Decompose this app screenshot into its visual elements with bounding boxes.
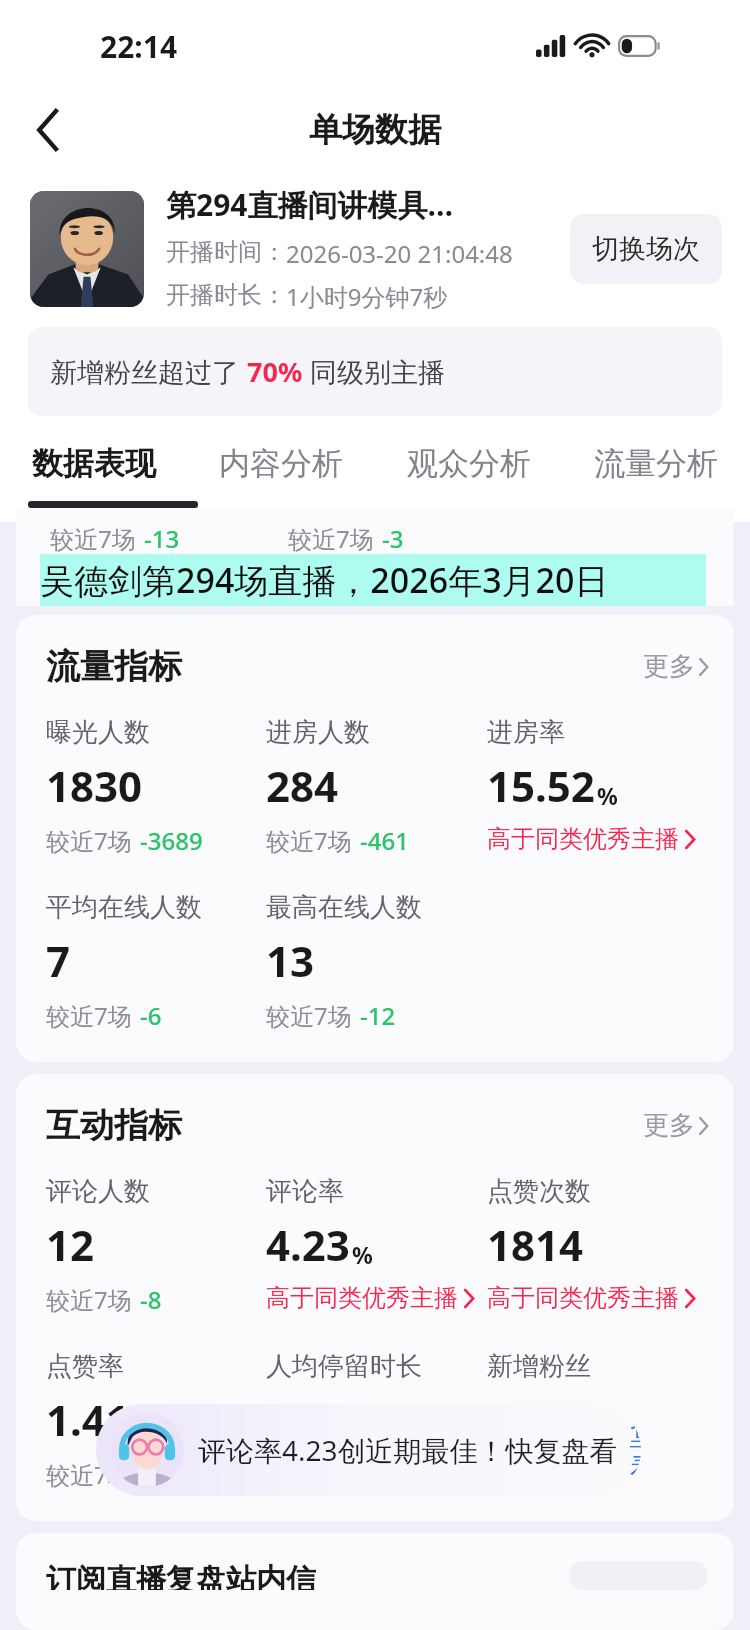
- button[interactable]: 点赞次数: [487, 1175, 695, 1313]
- staticText: 4.23: [266, 1216, 350, 1273]
- button[interactable]: 进房人数: [266, 716, 409, 857]
- staticText: 较近7场: [50, 522, 136, 554]
- staticText: 新增粉丝: [487, 1350, 591, 1383]
- staticText: 2026-03-20 21:04:48: [286, 237, 513, 270]
- staticText: 284: [266, 757, 339, 814]
- staticText: %: [352, 1239, 373, 1270]
- staticText: 12: [46, 1216, 95, 1273]
- staticText: 1814: [487, 1216, 584, 1273]
- staticText: 评论人数: [46, 1175, 150, 1208]
- staticText: -3689: [140, 824, 203, 857]
- staticText: %: [597, 780, 618, 811]
- staticText: 点赞率: [46, 1350, 124, 1383]
- staticText: 进房人数: [266, 716, 370, 749]
- staticText: 数据表现: [32, 444, 156, 483]
- staticText: 流量分析: [594, 444, 718, 483]
- button[interactable]: 评论人数: [46, 1175, 162, 1316]
- staticText: 平均在线人数: [46, 891, 202, 924]
- staticText: 高于同类优秀主播: [487, 824, 679, 854]
- staticText: 单场数据: [309, 109, 441, 151]
- button[interactable]: 内容分析: [215, 440, 347, 487]
- staticText: 1.41: [46, 1391, 130, 1448]
- staticText: 较近7场: [46, 1283, 132, 1316]
- staticText: 吴德剑第294场直播，2026年3月20日: [40, 557, 609, 603]
- staticText: 较近7场: [46, 1458, 132, 1491]
- staticText: 13: [266, 932, 315, 989]
- staticText: 观众分析: [407, 444, 531, 483]
- staticText: 最高在线人数: [266, 891, 422, 924]
- button[interactable]: 切换场次: [570, 214, 722, 284]
- staticText: +1.41%: [140, 1458, 222, 1491]
- staticText: -8: [140, 1283, 162, 1316]
- button[interactable]: 数据表现: [28, 440, 160, 487]
- button[interactable]: 进房率: [487, 716, 695, 854]
- staticText: 1.34: [266, 1391, 350, 1448]
- button[interactable]: Back: [20, 102, 76, 158]
- staticText: 70%: [247, 353, 303, 390]
- staticText: 评论率4.23创近期最佳！快复盘看: [198, 1431, 618, 1469]
- staticText: 互动指标: [46, 1104, 182, 1147]
- staticText: 1小时9分钟7秒: [286, 280, 448, 313]
- button[interactable]: 流量分析: [590, 440, 722, 487]
- staticText: -6: [140, 999, 162, 1032]
- staticText: 1830: [46, 757, 143, 814]
- staticText: %: [132, 1414, 153, 1445]
- staticText: 进房率: [487, 716, 565, 749]
- button[interactable]: 订阅直播复盘站内信: [16, 1533, 734, 1630]
- staticText: 高于同类优秀主播: [266, 1283, 458, 1313]
- staticText: 曝光人数: [46, 716, 150, 749]
- staticText: 流量指标: [46, 645, 182, 688]
- staticText: 分钟: [352, 1414, 402, 1445]
- staticText: 1: [487, 1391, 512, 1448]
- staticText: -461: [360, 824, 409, 857]
- staticText: 订阅直播复盘站内信: [46, 1561, 316, 1590]
- staticText: 同级别主播: [303, 353, 446, 390]
- staticText: 7: [46, 932, 71, 989]
- staticText: -13: [144, 522, 180, 554]
- staticText: 更多: [643, 650, 695, 683]
- staticText: 较近7场: [46, 824, 132, 857]
- button[interactable]: 新增粉丝超过了: [28, 327, 722, 416]
- staticText: 人均停留时长: [266, 1350, 422, 1383]
- button[interactable]: 更多: [643, 650, 708, 683]
- staticText: 较近7场: [266, 999, 352, 1032]
- button[interactable]: 查看: [630, 1413, 641, 1487]
- button[interactable]: 评论率: [266, 1175, 474, 1313]
- staticText: 新增粉丝超过了: [50, 353, 247, 390]
- staticText: 点赞次数: [487, 1175, 591, 1208]
- staticText: 切换场次: [592, 232, 700, 266]
- staticText: 开播时长：: [166, 280, 286, 310]
- button[interactable]: 评论率4.23创近期最佳！快复盘看: [96, 1404, 641, 1496]
- staticText: -4: [581, 1458, 603, 1491]
- staticText: 高于同类优秀主播: [266, 1458, 458, 1488]
- staticText: 较近7场: [288, 522, 374, 554]
- staticText: 第294直播间讲模具…: [166, 184, 454, 225]
- staticText: 查看: [630, 1413, 641, 1487]
- staticText: 较近7场: [487, 1458, 573, 1491]
- staticText: -3: [382, 522, 404, 554]
- button[interactable]: 点赞率: [46, 1350, 222, 1491]
- button[interactable]: 新增粉丝: [487, 1350, 603, 1491]
- staticText: 较近7场: [266, 824, 352, 857]
- staticText: 高于同类优秀主播: [487, 1283, 679, 1313]
- staticText: 更多: [643, 1109, 695, 1142]
- button[interactable]: 平均在线人数: [46, 891, 202, 1032]
- staticText: 内容分析: [219, 444, 343, 483]
- staticText: 开播时间：: [166, 237, 286, 267]
- staticText: -12: [360, 999, 396, 1032]
- staticText: 评论率: [266, 1175, 344, 1208]
- button[interactable]: 观众分析: [403, 440, 535, 487]
- button[interactable]: 更多: [643, 1109, 708, 1142]
- button[interactable]: 人均停留时长: [266, 1350, 474, 1488]
- staticText: 22:14: [100, 26, 178, 67]
- staticText: 较近7场: [46, 999, 132, 1032]
- staticText: 15.52: [487, 757, 595, 814]
- button[interactable]: 最高在线人数: [266, 891, 422, 1032]
- button[interactable]: 曝光人数: [46, 716, 203, 857]
